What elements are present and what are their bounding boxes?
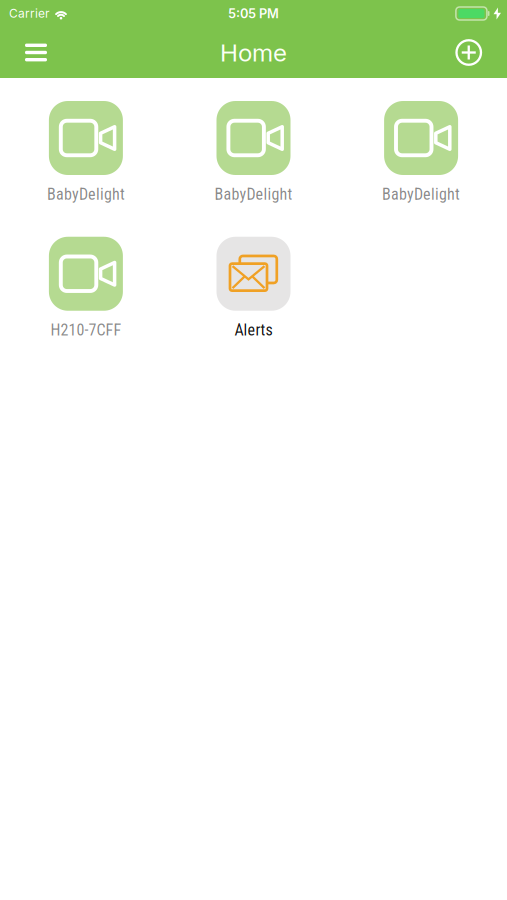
staticText: Alerts xyxy=(234,321,272,340)
button[interactable]: BabyDelight xyxy=(170,101,337,204)
staticText: BabyDelight xyxy=(214,185,292,204)
staticText: Carrier xyxy=(9,6,50,21)
staticText: H210-7CFF xyxy=(50,321,121,340)
button[interactable]: Alerts xyxy=(170,237,337,340)
button[interactable]: BabyDelight xyxy=(337,101,505,204)
button[interactable]: BabyDelight xyxy=(2,101,170,204)
staticText: Home xyxy=(220,38,287,67)
button[interactable]: H210-7CFF xyxy=(2,237,170,340)
button[interactable]: Add device xyxy=(456,32,507,73)
button[interactable]: Menu xyxy=(0,34,47,71)
staticText: BabyDelight xyxy=(47,185,125,204)
staticText: BabyDelight xyxy=(382,185,460,204)
staticText: 5:05 PM xyxy=(228,6,279,21)
